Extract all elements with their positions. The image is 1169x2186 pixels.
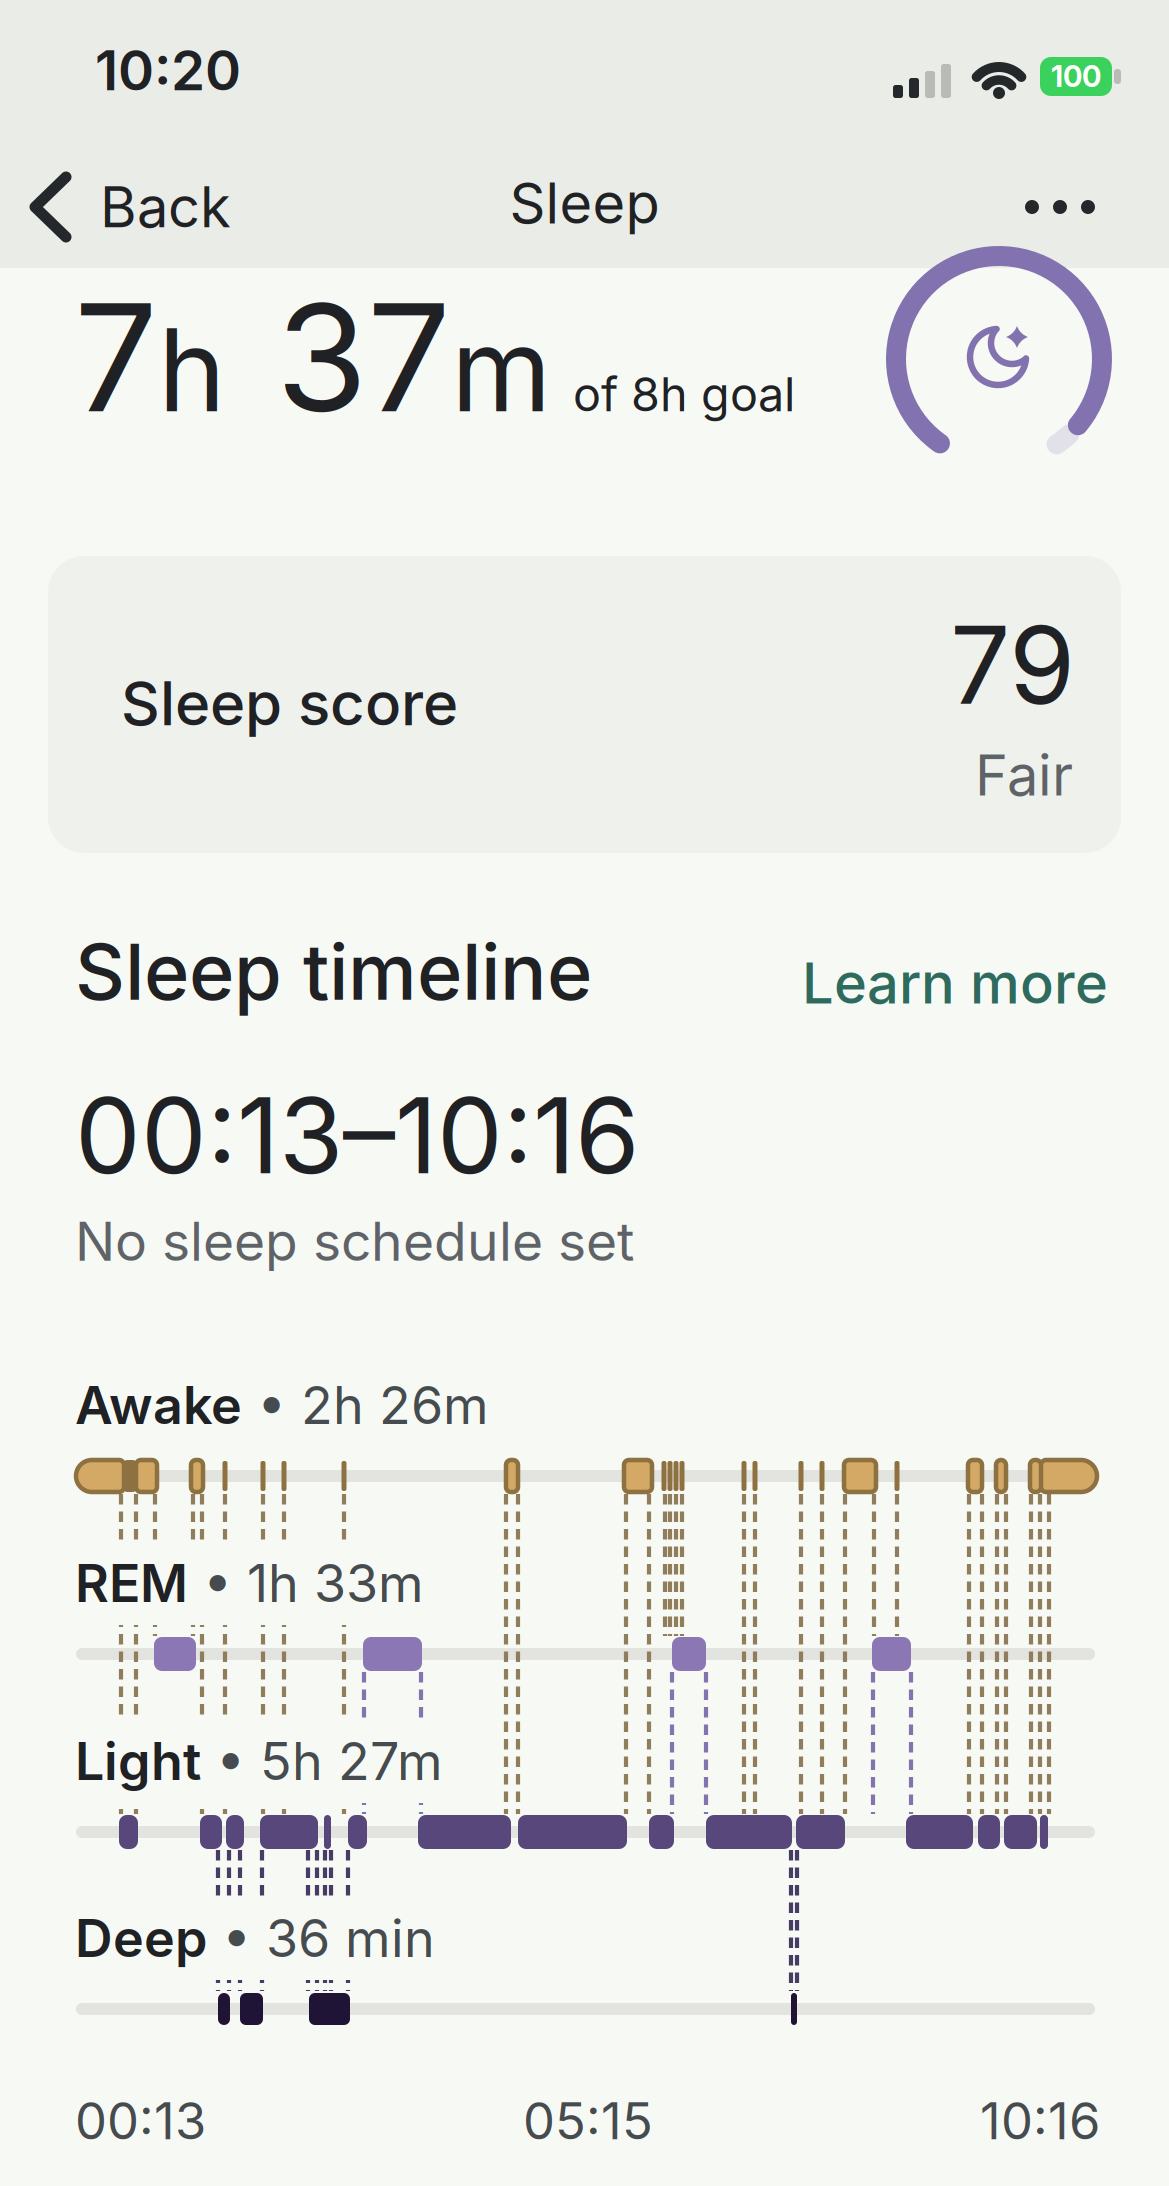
staticText: No sleep schedule set — [75, 1210, 634, 1273]
staticText: m — [451, 302, 551, 437]
button[interactable] — [48, 556, 1121, 853]
staticText: • 2h 26m — [242, 1374, 489, 1436]
staticText: 10:16 — [980, 2091, 1100, 2151]
staticText: 79 — [950, 602, 1075, 728]
button[interactable]: Learn more — [708, 950, 1108, 1016]
staticText: of 8h goal — [573, 367, 795, 422]
staticText: Deep — [75, 1907, 207, 1969]
staticText: 10:20 — [95, 38, 241, 102]
staticText: 05:15 — [523, 2091, 653, 2151]
staticText: Sleep — [509, 170, 659, 236]
staticText: Fair — [975, 742, 1073, 808]
staticText: 7 — [74, 270, 158, 445]
staticText: • 1h 33m — [188, 1552, 424, 1614]
staticText: • 36 min — [207, 1907, 435, 1969]
staticText: Light — [75, 1730, 201, 1792]
staticText: Sleep score — [121, 668, 458, 739]
staticText: 00:13 — [75, 2091, 206, 2151]
staticText: Learn more — [802, 950, 1108, 1016]
button[interactable]: More — [1022, 197, 1098, 217]
staticText: 00:13–10:16 — [75, 1074, 639, 1197]
staticText: Awake — [75, 1374, 242, 1436]
staticText: • 5h 27m — [201, 1730, 443, 1792]
staticText: h — [158, 302, 226, 437]
button[interactable]: Back — [30, 172, 231, 242]
staticText: Sleep timeline — [75, 926, 592, 1017]
staticText: 37 — [276, 270, 451, 445]
staticText: REM — [75, 1552, 188, 1614]
staticText: 100 — [1051, 59, 1101, 94]
staticText: Back — [100, 174, 231, 240]
